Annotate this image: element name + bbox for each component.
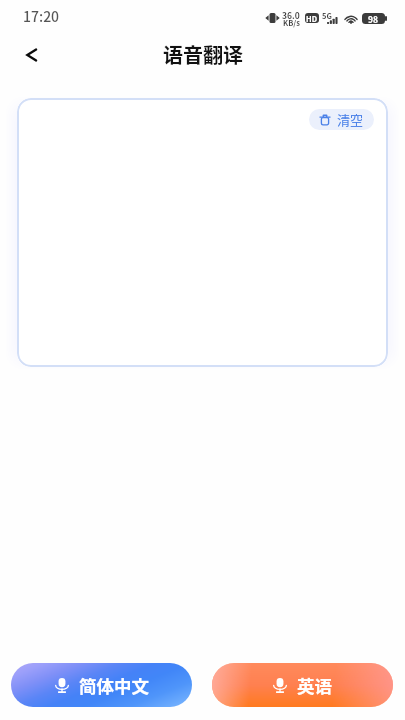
staticText: HD (306, 13, 318, 23)
staticText: 清空 (337, 110, 364, 129)
button[interactable]: 英语 (212, 663, 393, 707)
staticText: 98 (368, 13, 379, 24)
staticText: 17:20 (23, 6, 60, 26)
staticText: 36.0 (282, 9, 300, 21)
button[interactable]: 清空 (309, 109, 374, 130)
staticText: 语音翻译 (163, 40, 243, 69)
staticText: 英语 (297, 673, 332, 698)
staticText: 简体中文 (79, 673, 149, 698)
staticText: KB/s (283, 17, 300, 28)
staticText: 5G (322, 10, 332, 21)
button[interactable]: Back (11, 35, 51, 75)
button[interactable]: 简体中文 (11, 663, 192, 707)
